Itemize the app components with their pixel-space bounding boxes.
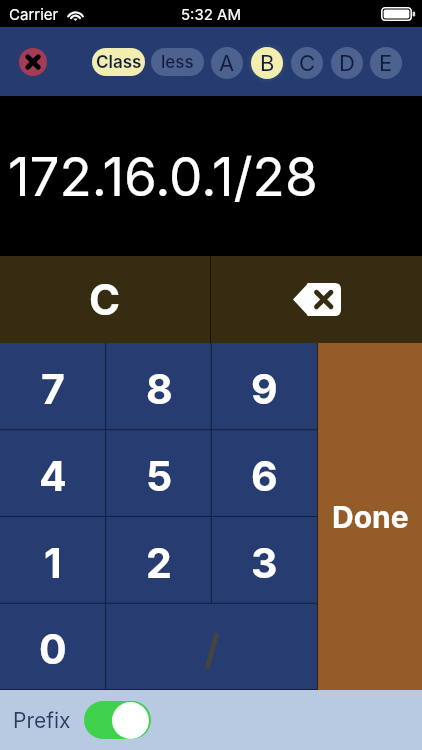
button[interactable]: 8 [106,343,212,430]
staticText: 3 [251,538,278,588]
staticText: 0 [39,624,67,674]
staticText: D [339,50,355,77]
staticText: less [161,52,194,73]
button[interactable]: Class [92,48,145,76]
button[interactable]: less [151,48,204,76]
staticText: 7 [41,364,65,414]
staticText: Class [96,52,142,73]
staticText: C [299,50,316,77]
staticText: C [89,274,121,325]
button[interactable]: 3 [211,517,317,604]
button[interactable]: 7 [0,343,106,430]
button[interactable]: C [291,47,323,79]
button[interactable]: 4 [0,430,106,517]
button[interactable]: 6 [211,430,317,517]
button[interactable]: A [211,47,243,79]
button[interactable]: 2 [106,517,212,604]
staticText: 9 [251,364,278,414]
button[interactable]: Backspace [211,256,422,343]
staticText: Prefix [13,708,71,733]
button[interactable]: B [251,47,283,79]
button[interactable]: C [0,256,210,343]
button[interactable]: D [331,47,363,79]
button[interactable]: Close [19,48,47,76]
button[interactable]: 5 [106,430,212,517]
button[interactable]: Prefix toggle [84,701,151,739]
staticText: 4 [39,451,67,501]
button[interactable]: E [370,47,402,79]
staticText: B [260,50,275,77]
button[interactable]: 9 [211,343,317,430]
button[interactable]: Done [318,343,422,690]
staticText: Carrier [9,5,59,23]
staticText: 5:32 AM [181,5,241,23]
staticText: A [219,50,235,77]
button[interactable]: 1 [0,517,106,604]
staticText: 1 [44,538,62,588]
staticText: 172.16.0.1/28 [8,145,318,209]
staticText: 6 [251,451,278,501]
staticText: / [204,624,220,674]
staticText: 5 [146,451,173,501]
button[interactable]: / [106,603,317,690]
staticText: E [379,50,393,77]
staticText: Done [332,499,409,535]
button[interactable]: 0 [0,603,106,690]
staticText: 8 [146,364,173,414]
staticText: 2 [146,538,172,588]
